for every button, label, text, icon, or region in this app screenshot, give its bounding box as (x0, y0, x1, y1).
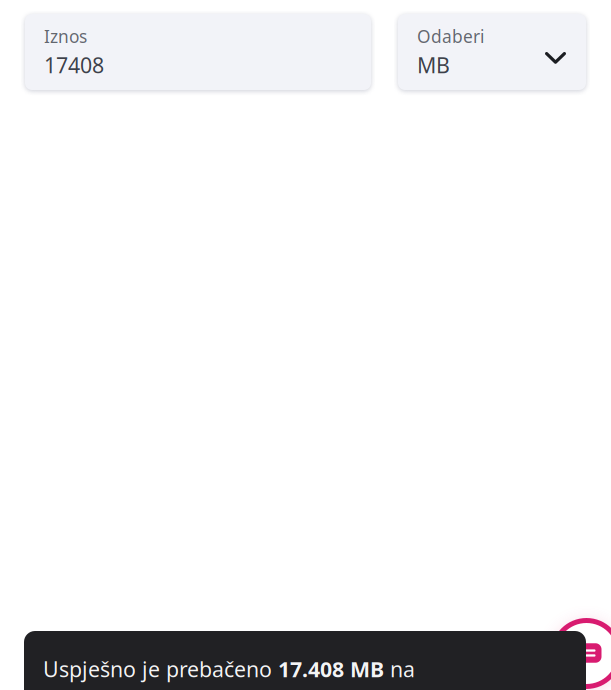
button[interactable]: Odaberi (398, 14, 586, 90)
button[interactable]: Transakcije (551, 618, 611, 689)
staticText: Uspješno je prebačeno 17.408 MB na (43, 655, 415, 683)
staticText: Iznos (44, 25, 87, 48)
staticText: Odaberi (417, 25, 484, 48)
staticText: 17408 (44, 51, 104, 79)
staticText: MB (417, 51, 450, 79)
button[interactable]: Iznos (25, 14, 371, 90)
